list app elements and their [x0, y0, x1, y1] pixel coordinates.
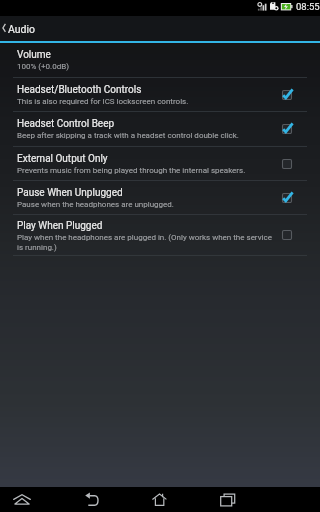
other: Play When Plugged	[279, 227, 295, 243]
button[interactable]: Play When Plugged	[0, 215, 320, 255]
staticText: Volume	[17, 49, 51, 61]
other: External Output Only	[279, 156, 295, 172]
button[interactable]: Recent apps	[208, 487, 248, 512]
staticText: This is also required for ICS lockscreen…	[17, 97, 189, 106]
staticText: Beep after skipping a track with a heads…	[17, 131, 239, 140]
other: Pause When Unplugged	[279, 190, 295, 206]
staticText: Prevents music from being played through…	[17, 166, 246, 175]
button[interactable]: Back	[72, 487, 113, 512]
staticText: External Output Only	[17, 153, 108, 165]
button[interactable]: Headset/Bluetooth Controls	[0, 78, 320, 111]
staticText: Play when the headphones are plugged in.…	[17, 233, 276, 251]
staticText: Audio	[8, 23, 36, 35]
staticText: Headset Control Beep	[17, 118, 115, 130]
button[interactable]: Show navigation	[4, 487, 40, 512]
other: Storage	[269, 1, 280, 12]
other: Headset Control Beep	[279, 121, 295, 137]
staticText: Pause when the headphones are unplugged.	[17, 200, 174, 209]
button[interactable]: Volume	[0, 43, 320, 77]
staticText: Play When Plugged	[17, 220, 103, 232]
staticText: Pause When Unplugged	[17, 187, 123, 199]
button[interactable]: External Output Only	[0, 147, 320, 180]
staticText: Headset/Bluetooth Controls	[17, 84, 142, 96]
staticText: 08:55	[296, 1, 320, 12]
button[interactable]: Headset Control Beep	[0, 112, 320, 146]
button[interactable]: Navigate up	[0, 16, 320, 41]
button[interactable]: Home	[140, 487, 180, 512]
staticText: 100% (+0.0dB)	[17, 62, 69, 71]
other: Headset/Bluetooth Controls	[279, 87, 295, 103]
other: Navigate up	[2, 23, 8, 33]
button[interactable]: Pause When Unplugged	[0, 181, 320, 214]
other: Signal	[256, 1, 268, 13]
